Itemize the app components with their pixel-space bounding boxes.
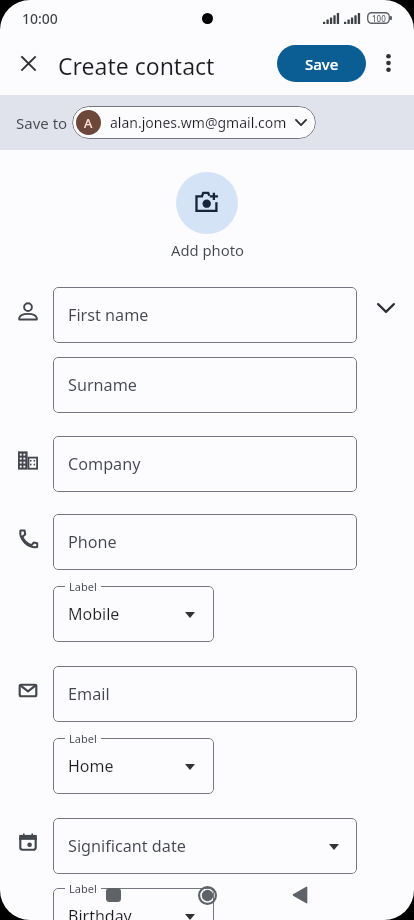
button[interactable]: Company (53, 436, 357, 492)
button[interactable]: Significant date (53, 818, 357, 874)
staticText: Company (68, 453, 141, 475)
staticText: Birthday (68, 905, 132, 920)
button[interactable]: A (72, 106, 316, 139)
button[interactable]: Email (53, 666, 357, 722)
staticText: Label (69, 731, 97, 746)
staticText: Phone (68, 531, 117, 553)
button[interactable]: More options (368, 43, 408, 83)
staticText: Create contact (58, 50, 215, 81)
staticText: alan.jones.wm@gmail.com (110, 113, 287, 132)
staticText: Significant date (68, 835, 186, 857)
staticText: 100 (372, 13, 386, 24)
button[interactable]: Close (8, 43, 48, 83)
button[interactable]: Add photo (176, 172, 238, 234)
button[interactable]: Surname (53, 357, 357, 413)
button[interactable]: Save to (0, 95, 414, 150)
button[interactable]: Phone (53, 514, 357, 570)
staticText: Label (69, 881, 97, 896)
button[interactable]: Mobile (53, 586, 214, 642)
button[interactable]: Back (280, 875, 320, 915)
button[interactable]: First name (53, 287, 357, 343)
button[interactable]: Home (187, 875, 227, 915)
staticText: Label (69, 579, 97, 594)
staticText: Surname (68, 374, 137, 396)
staticText: Add photo (171, 240, 244, 260)
staticText: Email (68, 683, 110, 705)
button[interactable]: Birthday (53, 888, 214, 920)
staticText: Save to (16, 113, 68, 133)
staticText: Mobile (68, 603, 120, 625)
button[interactable]: Recents (93, 875, 133, 915)
staticText: Home (68, 755, 114, 777)
staticText: First name (68, 304, 149, 326)
staticText: A (84, 114, 93, 132)
button[interactable]: Expand name fields (366, 288, 406, 328)
button[interactable]: Home (53, 738, 214, 794)
staticText: Save (305, 54, 339, 74)
button[interactable]: Save (277, 45, 366, 82)
staticText: 10:00 (22, 9, 58, 28)
